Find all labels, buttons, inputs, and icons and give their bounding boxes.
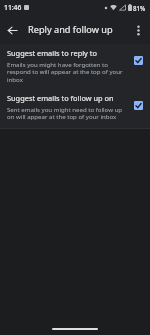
button[interactable]: Suggest emails to follow up on bbox=[0, 86, 150, 123]
button[interactable]: Back bbox=[2, 20, 22, 40]
button[interactable]: More options bbox=[128, 20, 148, 40]
staticText: 81% bbox=[133, 4, 146, 12]
staticText: 11:46 bbox=[4, 3, 22, 12]
button[interactable]: Suggest emails to reply to bbox=[0, 44, 150, 86]
button[interactable]: Toggle: Suggest emails to reply to bbox=[131, 53, 145, 67]
staticText: Emails you might have forgotten to respo… bbox=[7, 60, 128, 84]
staticText: Sent emails you might need to follow up … bbox=[7, 105, 128, 121]
staticText: Suggest emails to follow up on bbox=[7, 93, 114, 103]
staticText: Reply and follow up bbox=[28, 23, 113, 36]
staticText: Suggest emails to reply to bbox=[7, 48, 97, 58]
button[interactable]: Toggle: Suggest emails to follow up on bbox=[131, 98, 145, 112]
